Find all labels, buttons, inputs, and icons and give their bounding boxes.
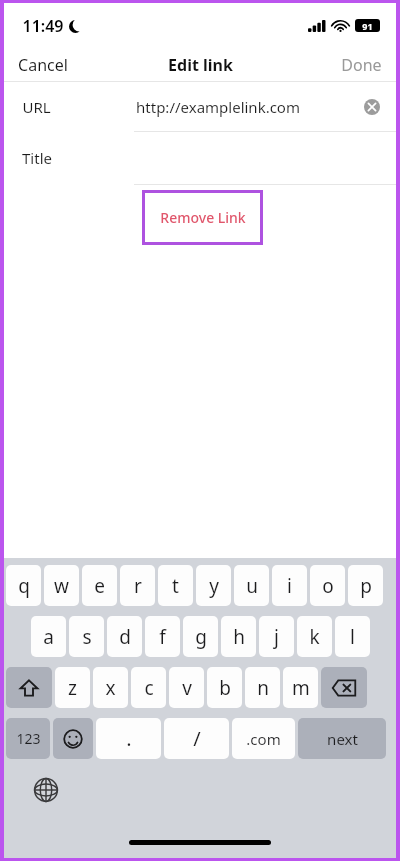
staticText: 91 (362, 20, 373, 32)
button[interactable]: next (298, 718, 386, 759)
staticText: s (82, 624, 92, 650)
button[interactable]: y (196, 565, 231, 606)
button[interactable]: u (234, 565, 269, 606)
staticText: x (105, 675, 116, 701)
button[interactable]: n (245, 667, 280, 708)
button[interactable]: Done (327, 50, 396, 80)
staticText: c (144, 675, 154, 701)
staticText: j (274, 624, 279, 650)
staticText: e (94, 573, 105, 599)
staticText: r (134, 573, 142, 599)
staticText: d (119, 624, 131, 650)
staticText: w (54, 573, 69, 599)
staticText: m (292, 675, 310, 701)
button[interactable]: s (69, 616, 104, 657)
button[interactable]: k (297, 616, 332, 657)
button[interactable]: r (120, 565, 155, 606)
button[interactable]: z (55, 667, 90, 708)
button[interactable]: b (207, 667, 242, 708)
staticText: q (18, 573, 30, 599)
staticText: next (327, 729, 358, 749)
staticText: .com (246, 729, 281, 749)
button[interactable]: e (82, 565, 117, 606)
button[interactable]: Shift (6, 667, 52, 708)
staticText: . (126, 725, 132, 752)
staticText: o (322, 573, 334, 599)
staticText: g (195, 624, 207, 650)
button[interactable]: p (348, 565, 383, 606)
staticText: Remove Link (160, 208, 246, 227)
button[interactable]: m (283, 667, 318, 708)
staticText: a (43, 624, 54, 650)
button[interactable]: Backspace (321, 667, 367, 708)
button[interactable]: x (93, 667, 128, 708)
button[interactable]: q (6, 565, 41, 606)
staticText: l (350, 624, 355, 650)
staticText: http://examplelink.com (136, 97, 300, 117)
button[interactable]: t (158, 565, 193, 606)
staticText: URL (22, 97, 51, 117)
button[interactable]: Clear text (362, 97, 382, 117)
staticText: Cancel (18, 54, 68, 76)
staticText: f (159, 624, 166, 650)
staticText: Edit link (168, 54, 233, 76)
button[interactable]: h (221, 616, 256, 657)
button[interactable]: . (96, 718, 161, 759)
button[interactable]: w (44, 565, 79, 606)
button[interactable]: i (272, 565, 307, 606)
staticText: z (68, 675, 77, 701)
button[interactable]: / (164, 718, 229, 759)
staticText: p (360, 573, 372, 599)
staticText: v (182, 675, 192, 701)
staticText: Title (22, 148, 52, 168)
staticText: u (246, 573, 258, 599)
staticText: 11:49 (22, 15, 64, 37)
button[interactable]: o (310, 565, 345, 606)
button[interactable]: Cancel (4, 50, 82, 80)
button[interactable]: Remove Link (142, 190, 263, 245)
button[interactable]: l (335, 616, 370, 657)
button[interactable]: c (131, 667, 166, 708)
button[interactable]: v (169, 667, 204, 708)
button[interactable]: a (31, 616, 66, 657)
button[interactable]: g (183, 616, 218, 657)
staticText: / (193, 725, 201, 752)
staticText: i (287, 573, 292, 599)
staticText: h (233, 624, 245, 650)
button[interactable]: f (145, 616, 180, 657)
button[interactable]: Emoji (53, 718, 93, 759)
staticText: Done (341, 54, 382, 76)
button[interactable]: j (259, 616, 294, 657)
button[interactable]: Change keyboard language (31, 775, 61, 805)
staticText: n (257, 675, 269, 701)
button[interactable]: d (107, 616, 142, 657)
button[interactable]: 123 (6, 718, 50, 759)
staticText: 123 (16, 729, 41, 748)
staticText: t (172, 573, 179, 599)
staticText: y (209, 573, 219, 599)
button[interactable]: .com (232, 718, 295, 759)
staticText: k (309, 624, 320, 650)
staticText: b (219, 675, 231, 701)
